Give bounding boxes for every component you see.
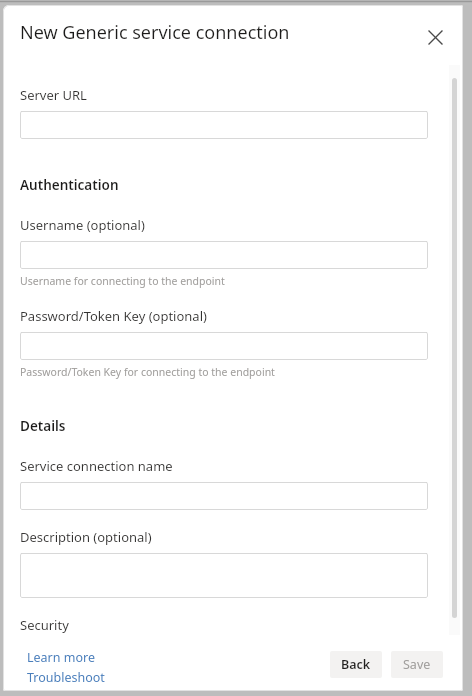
button[interactable] <box>20 482 428 510</box>
staticText: Password/Token Key (optional) <box>20 307 207 325</box>
button[interactable] <box>20 553 428 598</box>
staticText: Back <box>341 656 371 673</box>
button[interactable]: Save <box>391 651 443 678</box>
staticText: Password/Token Key for connecting to the… <box>20 365 275 379</box>
button[interactable]: Back <box>330 651 382 678</box>
staticText: Save <box>403 656 431 673</box>
staticText: Service connection name <box>20 457 173 475</box>
staticText: Authentication <box>20 176 119 194</box>
button[interactable] <box>20 332 428 360</box>
button[interactable]: Close <box>417 19 453 55</box>
button[interactable]: Learn more <box>27 649 95 666</box>
staticText: Details <box>20 417 66 435</box>
staticText: Username for connecting to the endpoint <box>20 274 225 288</box>
staticText: Server URL <box>20 86 87 104</box>
staticText: Username (optional) <box>20 216 145 234</box>
button[interactable]: Troubleshoot <box>27 669 105 686</box>
button[interactable] <box>20 111 428 139</box>
staticText: Troubleshoot <box>27 669 105 686</box>
staticText: Security <box>20 616 69 634</box>
staticText: Learn more <box>27 649 95 666</box>
staticText: New Generic service connection <box>20 20 290 45</box>
button[interactable] <box>20 241 428 269</box>
staticText: Description (optional) <box>20 528 152 546</box>
